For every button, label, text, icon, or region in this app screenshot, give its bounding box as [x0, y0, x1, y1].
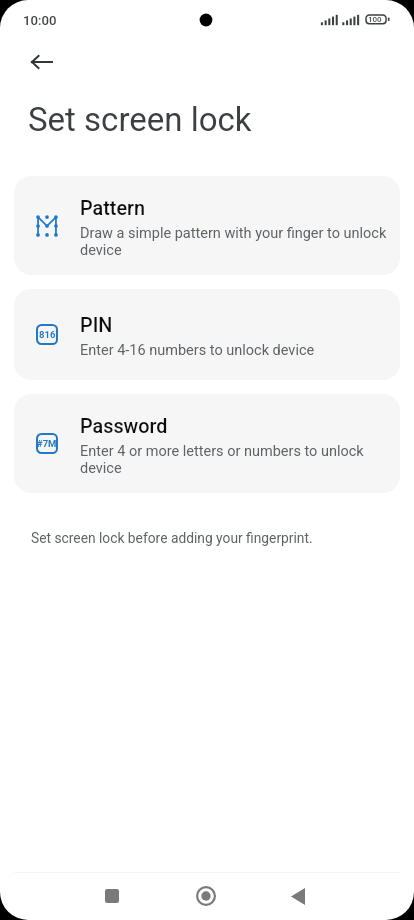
staticText: Set screen lock before adding your finge…	[31, 530, 313, 546]
staticText: Set screen lock	[28, 100, 252, 139]
staticText: 100	[368, 15, 382, 24]
staticText: Pattern	[80, 197, 146, 220]
staticText: Password	[80, 415, 168, 438]
button[interactable]: Recent apps	[88, 872, 136, 920]
button[interactable]: Pattern	[14, 176, 400, 275]
staticText: 10:00	[23, 13, 57, 28]
button[interactable]: 816	[14, 289, 400, 380]
staticText: Enter 4 or more letters or numbers to un…	[80, 443, 392, 477]
staticText: Draw a simple pattern with your finger t…	[80, 225, 392, 259]
button[interactable]: Back	[274, 872, 322, 920]
button[interactable]: Home	[182, 872, 230, 920]
staticText: 816	[39, 329, 56, 340]
button[interactable]: #7M	[14, 394, 400, 493]
staticText: Enter 4-16 numbers to unlock device	[80, 342, 315, 359]
button[interactable]: Navigate up	[17, 40, 65, 84]
staticText: PIN	[80, 314, 113, 337]
staticText: #7M	[37, 438, 57, 449]
